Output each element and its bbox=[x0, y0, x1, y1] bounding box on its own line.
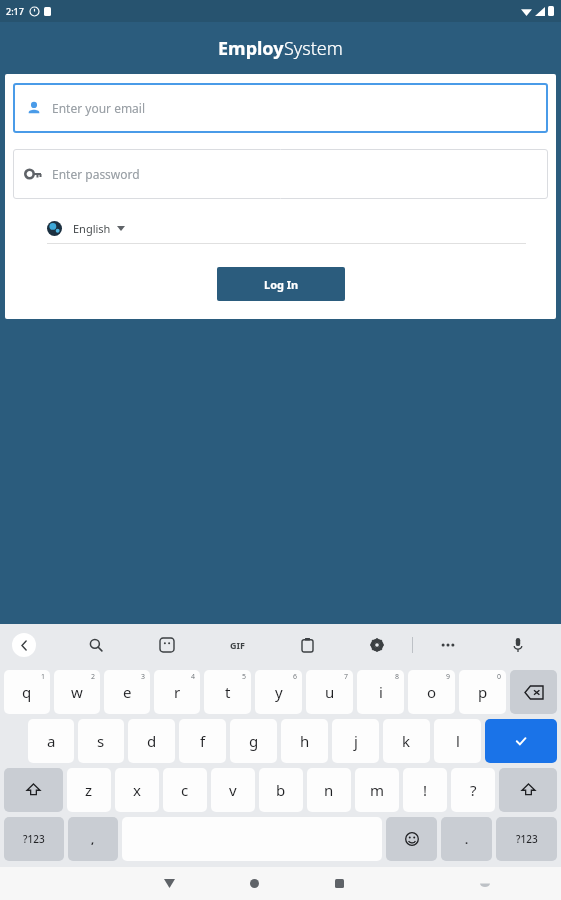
button[interactable]: Shift bbox=[4, 768, 63, 812]
button[interactable]: Symbols bbox=[4, 817, 64, 861]
staticText: 7 bbox=[344, 672, 349, 682]
button[interactable]: Search bbox=[60, 624, 131, 666]
staticText: 9 bbox=[446, 672, 451, 682]
button[interactable]: j bbox=[332, 719, 379, 763]
staticText: Log In bbox=[264, 277, 299, 292]
staticText: v bbox=[229, 780, 237, 800]
staticText: 2 bbox=[91, 672, 96, 682]
staticText: u bbox=[325, 682, 335, 702]
staticText: 1 bbox=[41, 672, 46, 682]
button[interactable]: q bbox=[4, 670, 50, 714]
button[interactable]: Log In bbox=[217, 267, 345, 301]
button[interactable]: Back bbox=[127, 867, 212, 900]
staticText: y bbox=[275, 682, 283, 702]
button[interactable]: c bbox=[163, 768, 207, 812]
staticText: w bbox=[71, 682, 83, 702]
staticText: n bbox=[324, 780, 334, 800]
button[interactable]: Stickers bbox=[131, 624, 202, 666]
button[interactable]: English bbox=[13, 213, 548, 243]
button[interactable]: More bbox=[413, 624, 483, 666]
staticText: , bbox=[91, 832, 95, 847]
button[interactable]: ! bbox=[403, 768, 447, 812]
staticText: t bbox=[225, 682, 231, 702]
staticText: x bbox=[133, 780, 141, 800]
staticText: 2:17 bbox=[6, 5, 24, 17]
button[interactable]: d bbox=[128, 719, 175, 763]
button[interactable]: GIF bbox=[202, 624, 272, 666]
button[interactable]: k bbox=[383, 719, 430, 763]
button[interactable]: w bbox=[54, 670, 100, 714]
button[interactable]: Shift bbox=[499, 768, 557, 812]
button[interactable]: p bbox=[459, 670, 506, 714]
button[interactable]: Voice input bbox=[483, 624, 553, 666]
staticText: d bbox=[147, 731, 157, 751]
staticText: Employ bbox=[218, 36, 284, 61]
button[interactable]: y bbox=[255, 670, 302, 714]
staticText: a bbox=[47, 731, 56, 751]
staticText: c bbox=[181, 780, 189, 800]
button[interactable]: z bbox=[67, 768, 111, 812]
staticText: . bbox=[465, 832, 469, 847]
staticText: 8 bbox=[395, 672, 400, 682]
staticText: 0 bbox=[497, 672, 502, 682]
button[interactable]: Enter bbox=[485, 719, 557, 763]
button[interactable]: Backspace bbox=[510, 670, 557, 714]
staticText: k bbox=[402, 731, 411, 751]
button[interactable]: t bbox=[204, 670, 251, 714]
button[interactable]: Period bbox=[441, 817, 492, 861]
staticText: 6 bbox=[293, 672, 298, 682]
staticText: ?123 bbox=[516, 832, 538, 846]
button[interactable]: a bbox=[28, 719, 74, 763]
staticText: m bbox=[370, 780, 385, 800]
staticText: 3 bbox=[141, 672, 146, 682]
button[interactable]: Clipboard bbox=[272, 624, 342, 666]
staticText: g bbox=[249, 731, 259, 751]
button[interactable]: ? bbox=[451, 768, 495, 812]
staticText: l bbox=[456, 731, 460, 751]
button[interactable]: h bbox=[281, 719, 328, 763]
button[interactable]: Enter password bbox=[13, 149, 548, 199]
button[interactable]: u bbox=[306, 670, 353, 714]
button[interactable]: n bbox=[307, 768, 351, 812]
button[interactable]: Recents bbox=[297, 867, 382, 900]
button[interactable]: Home bbox=[212, 867, 297, 900]
staticText: f bbox=[200, 731, 206, 751]
staticText: i bbox=[379, 682, 383, 702]
button[interactable]: Settings bbox=[342, 624, 412, 666]
button[interactable]: r bbox=[154, 670, 200, 714]
button[interactable]: Enter your email bbox=[13, 83, 548, 133]
button[interactable]: o bbox=[408, 670, 455, 714]
staticText: z bbox=[85, 780, 93, 800]
staticText: o bbox=[427, 682, 437, 702]
staticText: e bbox=[123, 682, 132, 702]
button[interactable]: Emoji bbox=[386, 817, 437, 861]
button[interactable]: e bbox=[104, 670, 150, 714]
button[interactable]: Back bbox=[12, 633, 36, 657]
button[interactable]: g bbox=[230, 719, 277, 763]
button[interactable]: f bbox=[179, 719, 226, 763]
staticText: q bbox=[22, 682, 32, 702]
staticText: English bbox=[73, 221, 111, 236]
button[interactable]: i bbox=[357, 670, 404, 714]
button[interactable]: s bbox=[78, 719, 124, 763]
button[interactable]: Keyboard toggle bbox=[442, 867, 527, 900]
button[interactable]: b bbox=[259, 768, 303, 812]
staticText: b bbox=[276, 780, 286, 800]
staticText: 5 bbox=[242, 672, 247, 682]
staticText: ! bbox=[423, 780, 428, 800]
staticText: p bbox=[478, 682, 488, 702]
button[interactable]: Symbols bbox=[496, 817, 557, 861]
button[interactable]: x bbox=[115, 768, 159, 812]
staticText: Enter password bbox=[52, 166, 140, 182]
button[interactable]: Comma bbox=[68, 817, 118, 861]
staticText: j bbox=[354, 731, 358, 751]
button[interactable]: v bbox=[211, 768, 255, 812]
staticText: ? bbox=[470, 780, 477, 800]
staticText: GIF bbox=[230, 639, 245, 651]
button[interactable]: m bbox=[355, 768, 399, 812]
button[interactable]: l bbox=[434, 719, 481, 763]
staticText: ?123 bbox=[23, 832, 45, 846]
staticText: s bbox=[97, 731, 105, 751]
staticText: Enter your email bbox=[52, 100, 146, 116]
